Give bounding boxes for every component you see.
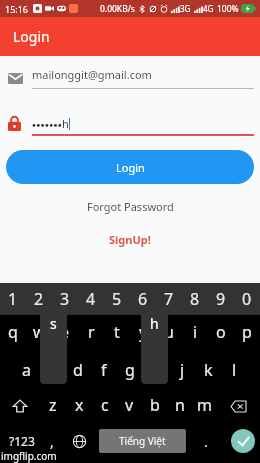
staticText: 8: [190, 288, 200, 310]
button[interactable]: b: [142, 389, 167, 423]
staticText: x: [75, 394, 84, 416]
button[interactable]: 1: [0, 283, 26, 315]
button[interactable]: i: [182, 315, 208, 354]
staticText: h: [150, 314, 159, 333]
staticText: c: [101, 394, 109, 416]
button[interactable]: d: [65, 354, 91, 389]
button[interactable]: e: [52, 315, 78, 354]
staticText: 2: [34, 288, 44, 310]
staticText: Forgot Password: [87, 199, 174, 214]
button[interactable]: c: [92, 389, 117, 423]
button[interactable]: t: [104, 315, 130, 354]
button[interactable]: q: [0, 315, 26, 354]
button[interactable]: 5: [104, 283, 130, 315]
staticText: 4: [86, 288, 96, 310]
button[interactable]: h: [143, 354, 169, 389]
button[interactable]: s: [39, 354, 65, 389]
button[interactable]: f: [91, 354, 117, 389]
button[interactable]: j: [169, 354, 195, 389]
staticText: q: [8, 321, 18, 343]
staticText: 3G: [180, 3, 191, 14]
button[interactable]: 9: [208, 283, 234, 315]
staticText: k: [204, 359, 213, 381]
staticText: 0.00KB/s: [100, 3, 135, 15]
staticText: b: [150, 394, 160, 416]
button[interactable]: SignUp!: [0, 232, 260, 247]
staticText: mailonggit@gmail.com: [32, 67, 152, 82]
staticText: Tiếng Việt: [119, 434, 166, 448]
staticText: 6: [138, 288, 148, 310]
staticText: a: [22, 359, 31, 381]
staticText: y: [139, 321, 148, 343]
button[interactable]: ?123: [0, 423, 44, 459]
staticText: o: [216, 321, 226, 343]
button[interactable]: g: [117, 354, 143, 389]
staticText: ?123: [9, 433, 35, 449]
button[interactable]: p: [234, 315, 260, 354]
staticText: t: [114, 321, 120, 343]
button[interactable]: y: [130, 315, 156, 354]
button[interactable]: ,: [44, 423, 60, 459]
button[interactable]: k: [195, 354, 221, 389]
staticText: 5: [112, 288, 122, 310]
button[interactable]: Forgot Password: [0, 199, 260, 214]
staticText: g: [125, 359, 135, 381]
button[interactable]: 6: [130, 283, 156, 315]
button[interactable]: m: [192, 389, 217, 423]
staticText: .: [204, 432, 208, 451]
staticText: j: [180, 359, 185, 381]
button[interactable]: v: [117, 389, 142, 423]
staticText: f: [101, 359, 107, 381]
staticText: ,: [50, 432, 54, 451]
staticText: l: [232, 359, 237, 381]
staticText: m: [197, 394, 212, 416]
staticText: imgflip.com: [1, 449, 57, 463]
button[interactable]: 2: [26, 283, 52, 315]
staticText: 100%: [217, 3, 239, 15]
button[interactable]: Login: [6, 150, 254, 184]
button[interactable]: n: [167, 389, 192, 423]
button[interactable]: Shift: [0, 389, 40, 423]
staticText: Login: [116, 160, 145, 175]
staticText: w: [33, 321, 46, 343]
staticText: v: [125, 394, 134, 416]
button[interactable]: l: [221, 354, 247, 389]
staticText: 4G: [203, 3, 214, 14]
staticText: 1: [8, 288, 18, 310]
button[interactable]: Tiếng Việt: [99, 429, 186, 453]
button[interactable]: x: [66, 389, 92, 423]
staticText: i: [193, 321, 198, 343]
staticText: 9: [216, 288, 226, 310]
staticText: s: [50, 314, 57, 333]
button[interactable]: Backspace: [217, 389, 260, 423]
staticText: u: [164, 321, 174, 343]
staticText: d: [73, 359, 83, 381]
staticText: Login: [13, 27, 50, 46]
button[interactable]: .: [186, 423, 226, 459]
button[interactable]: w: [26, 315, 52, 354]
staticText: r: [88, 321, 95, 343]
staticText: 0: [242, 288, 252, 310]
staticText: n: [175, 394, 185, 416]
button[interactable]: o: [208, 315, 234, 354]
staticText: h: [62, 116, 69, 131]
staticText: z: [49, 394, 57, 416]
button[interactable]: 7: [156, 283, 182, 315]
staticText: p: [242, 321, 252, 343]
button[interactable]: 3: [52, 283, 78, 315]
button[interactable]: u: [156, 315, 182, 354]
staticText: 3: [60, 288, 70, 310]
button[interactable]: 0: [234, 283, 260, 315]
button[interactable]: z: [40, 389, 66, 423]
button[interactable]: 4: [78, 283, 104, 315]
button[interactable]: Enter: [226, 423, 260, 459]
button[interactable]: 8: [182, 283, 208, 315]
button[interactable]: r: [78, 315, 104, 354]
button[interactable]: a: [13, 354, 39, 389]
staticText: e: [60, 321, 70, 343]
staticText: SignUp!: [109, 232, 151, 247]
button[interactable]: Change language: [60, 423, 99, 459]
staticText: 7: [164, 288, 174, 310]
